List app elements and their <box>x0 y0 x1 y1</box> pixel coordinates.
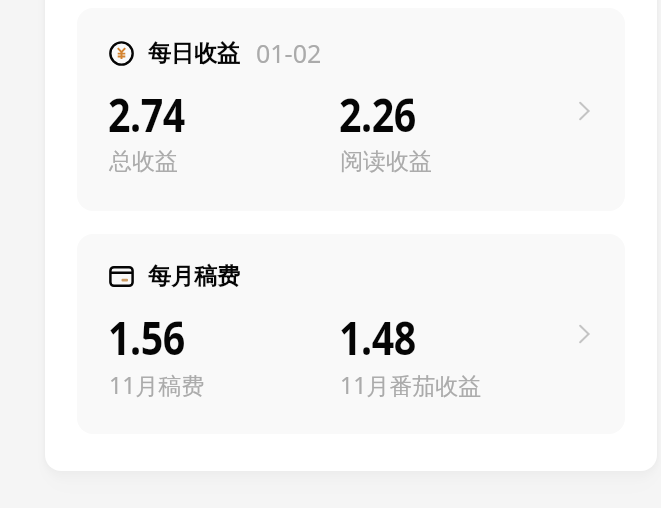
staticText: 总收益 <box>109 147 178 176</box>
staticText: 阅读收益 <box>340 147 432 176</box>
staticText: 每月稿费 <box>148 262 240 291</box>
button[interactable]: View details <box>573 322 597 346</box>
staticText: 1.48 <box>339 306 416 369</box>
staticText: 01-02 <box>256 36 322 70</box>
staticText: 2.74 <box>108 83 185 146</box>
button[interactable]: View details <box>573 99 597 123</box>
button[interactable]: 每月稿费 <box>77 234 625 434</box>
staticText: 1.56 <box>108 306 185 369</box>
staticText: 2.26 <box>339 83 416 146</box>
staticText: 11月稿费 <box>109 369 205 400</box>
button[interactable]: 每日收益 <box>77 8 625 211</box>
staticText: 每日收益 <box>148 39 240 68</box>
staticText: 11月番茄收益 <box>340 369 482 400</box>
